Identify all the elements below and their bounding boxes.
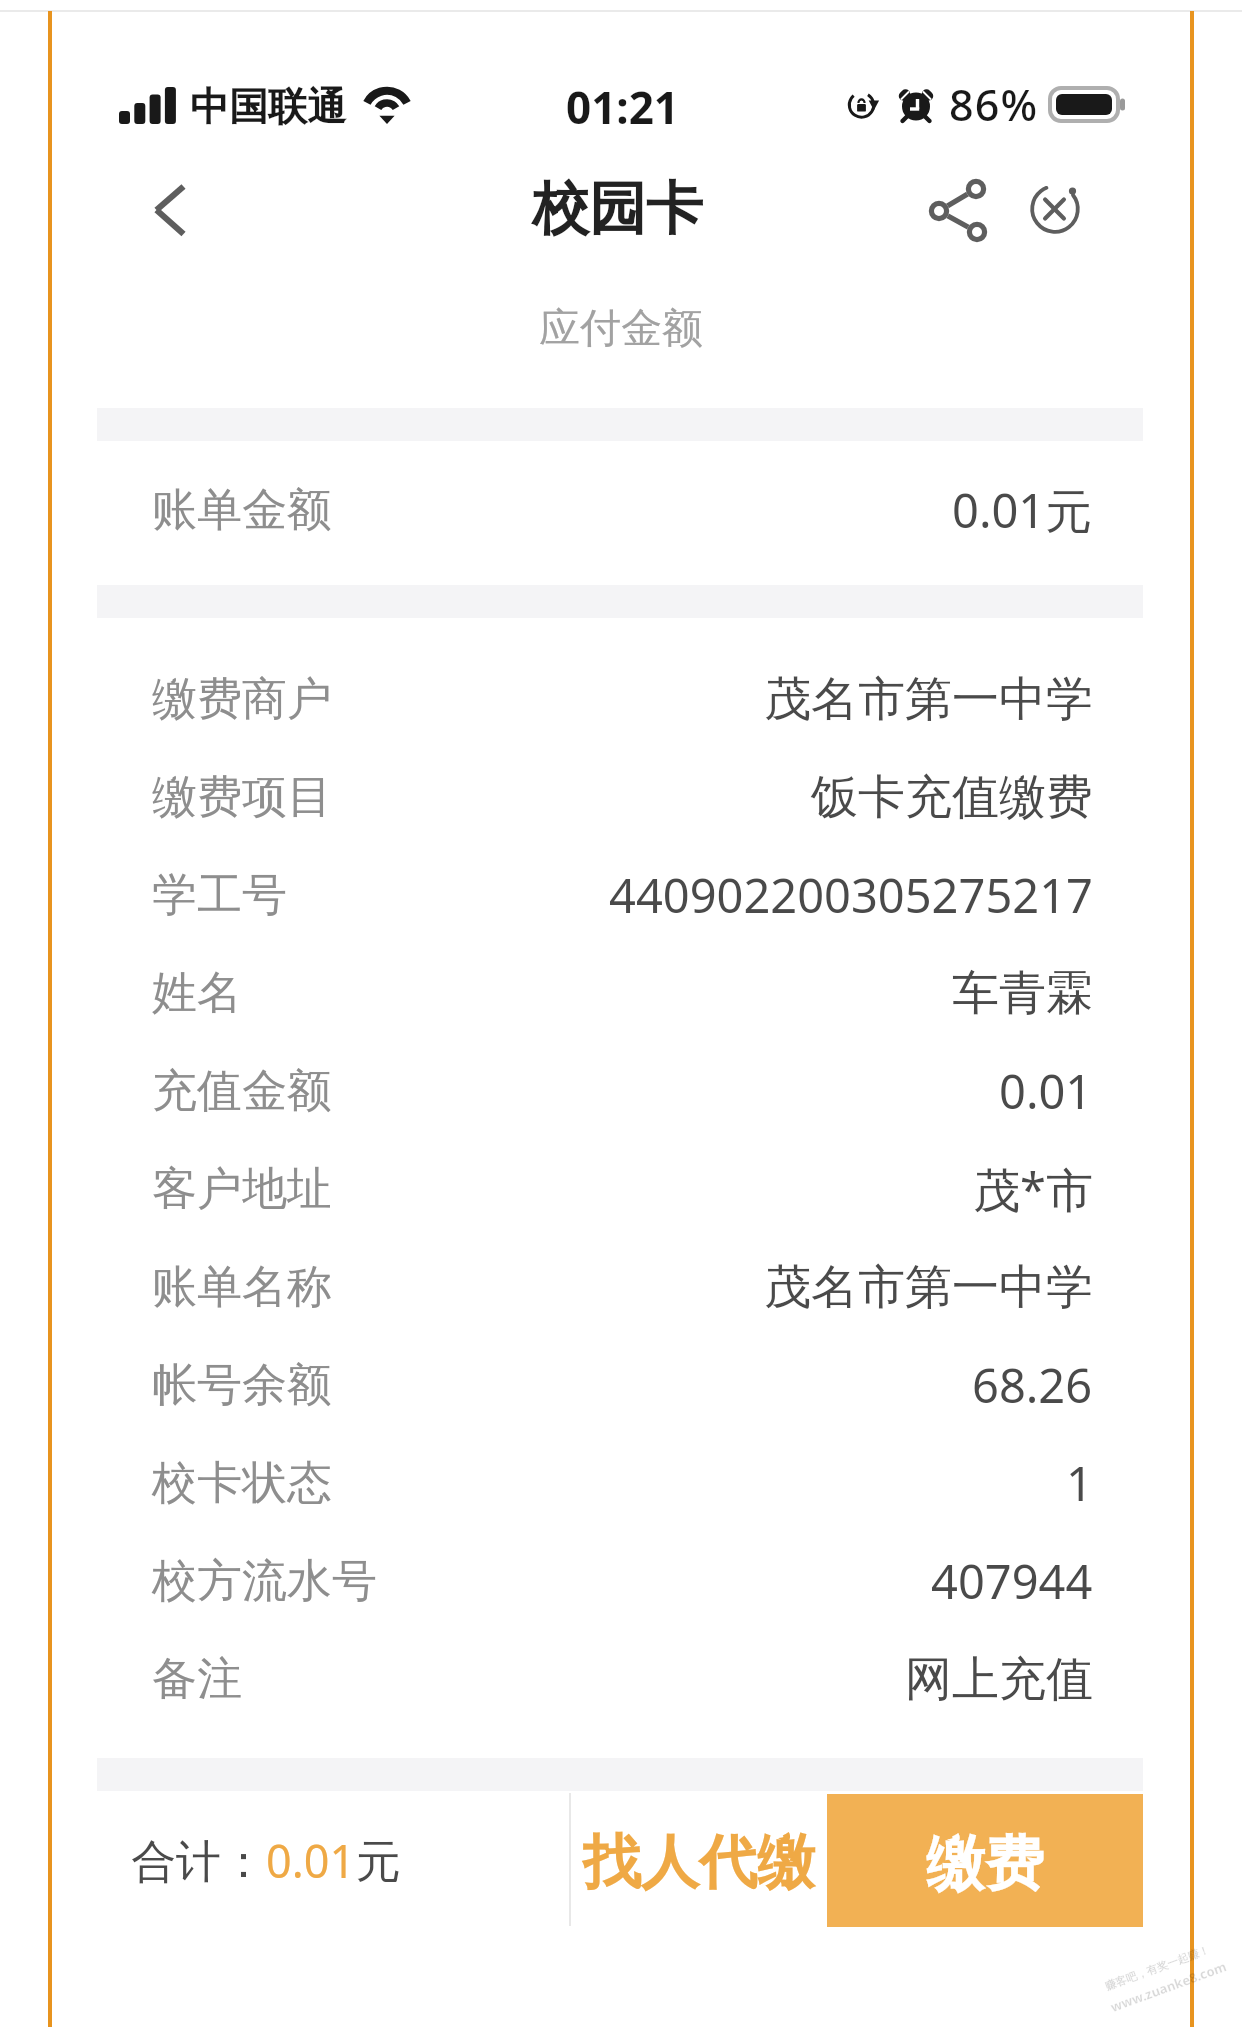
- button[interactable]: Back: [124, 164, 216, 256]
- button[interactable]: 备注: [0, 1643, 1242, 1715]
- button[interactable]: 充值金额: [0, 1055, 1242, 1127]
- staticText: 账单名称: [152, 1259, 332, 1316]
- button[interactable]: 缴费: [827, 1794, 1143, 1927]
- staticText: 68.26: [972, 1353, 1093, 1417]
- staticText: 元: [356, 1834, 401, 1891]
- staticText: 找人代缴: [583, 1826, 815, 1899]
- staticText: 学工号: [152, 867, 287, 924]
- staticText: 01:21: [566, 77, 680, 137]
- staticText: 中国联通: [190, 82, 346, 131]
- button[interactable]: 客户地址: [0, 1153, 1242, 1225]
- staticText: 姓名: [152, 965, 242, 1022]
- button[interactable]: 账单金额: [0, 474, 1242, 546]
- button[interactable]: 校卡状态: [0, 1447, 1242, 1519]
- staticText: 合计：: [131, 1834, 266, 1891]
- staticText: 赚客吧，有奖一起赚！: [1103, 1942, 1211, 1993]
- staticText: 校卡状态: [152, 1455, 332, 1512]
- staticText: 茂名市第一中学: [764, 670, 1093, 729]
- staticText: 应付金额: [0, 303, 1242, 355]
- staticText: 0.01元: [952, 478, 1093, 542]
- staticText: 0.01: [266, 1830, 356, 1891]
- staticText: 账单金额: [152, 482, 332, 539]
- staticText: 校方流水号: [152, 1553, 377, 1610]
- staticText: 缴费: [926, 1827, 1044, 1901]
- button[interactable]: 账单名称: [0, 1251, 1242, 1323]
- staticText: 缴费商户: [152, 671, 332, 728]
- staticText: 备注: [152, 1651, 242, 1708]
- button[interactable]: 缴费商户: [0, 663, 1242, 735]
- staticText: 茂名市第一中学: [764, 1258, 1093, 1317]
- button[interactable]: Share: [922, 175, 992, 245]
- button[interactable]: Close: [1020, 174, 1090, 244]
- button[interactable]: 校方流水号: [0, 1545, 1242, 1617]
- staticText: www.zuanke8.com: [1108, 1957, 1230, 2016]
- staticText: 茂*市: [973, 1157, 1093, 1221]
- button[interactable]: 找人代缴: [571, 1793, 827, 1926]
- button[interactable]: 帐号余额: [0, 1349, 1242, 1421]
- staticText: 网上充值: [905, 1650, 1093, 1709]
- staticText: 饭卡充值缴费: [811, 768, 1093, 827]
- staticText: 缴费项目: [152, 769, 332, 826]
- staticText: 407944: [931, 1549, 1093, 1613]
- staticText: 86%: [949, 75, 1039, 134]
- staticText: 客户地址: [152, 1161, 332, 1218]
- staticText: 1: [1066, 1451, 1093, 1515]
- button[interactable]: 学工号: [0, 859, 1242, 931]
- staticText: 充值金额: [152, 1063, 332, 1120]
- staticText: 帐号余额: [152, 1357, 332, 1414]
- button[interactable]: 缴费项目: [0, 761, 1242, 833]
- staticText: 车青霖: [952, 964, 1093, 1023]
- button[interactable]: 姓名: [0, 957, 1242, 1029]
- staticText: 校园卡: [532, 173, 703, 245]
- staticText: 440902200305275217: [609, 863, 1093, 927]
- staticText: 0.01: [999, 1059, 1093, 1123]
